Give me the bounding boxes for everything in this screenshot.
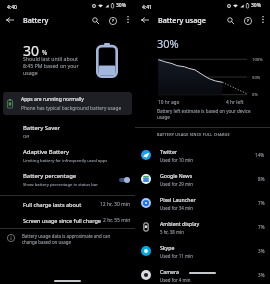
button[interactable]: Battery percentage xyxy=(0,172,135,188)
staticText: 30 xyxy=(23,41,40,60)
staticText: Adaptive Battery xyxy=(23,148,69,156)
staticText: Used for 34 min xyxy=(160,205,193,211)
staticText: Full charge lasts about xyxy=(23,201,100,208)
staticText: Battery Saver xyxy=(23,124,60,132)
staticText: 0% xyxy=(252,92,258,98)
staticText: BATTERY USAGE SINCE FULL CHARGE xyxy=(157,132,230,137)
staticText: Battery xyxy=(23,15,49,25)
staticText: 8% xyxy=(258,176,265,182)
button[interactable]: Full charge lasts about xyxy=(0,196,135,212)
staticText: Show battery percentage in status bar xyxy=(23,182,98,188)
staticText: Pixel Launcher xyxy=(160,196,196,203)
button[interactable]: Screen usage since full charge xyxy=(0,212,135,228)
staticText: Battery percentage xyxy=(23,172,77,180)
staticText: Camera xyxy=(160,268,179,275)
button[interactable]: Google News xyxy=(135,167,270,191)
staticText: Screen usage since full charge xyxy=(23,217,103,224)
staticText: Twitter xyxy=(160,148,178,155)
button[interactable]: Apps are running normally xyxy=(3,92,132,115)
button[interactable]: Battery Saver xyxy=(0,124,135,140)
staticText: 7% xyxy=(258,224,265,230)
staticText: 30% xyxy=(251,2,261,9)
staticText: 3% xyxy=(258,272,265,278)
staticText: Should last until about 8:45 PM based on… xyxy=(23,55,93,76)
staticText: ? xyxy=(247,18,249,24)
staticText: Phone has typical background battery usa… xyxy=(21,105,122,112)
button[interactable]: Search xyxy=(222,12,239,29)
staticText: Used for 29 min xyxy=(160,181,193,187)
button[interactable]: Twitter xyxy=(135,143,270,167)
button[interactable]: Help xyxy=(239,12,256,29)
staticText: Skype xyxy=(160,244,175,251)
staticText: Used for 10 min xyxy=(160,157,193,163)
staticText: Used for 11 min xyxy=(160,253,193,259)
button[interactable]: Search xyxy=(87,12,104,29)
button[interactable]: Ambient display xyxy=(135,215,270,239)
staticText: % xyxy=(42,48,48,56)
staticText: 5 hr, 38 min xyxy=(160,229,184,235)
staticText: Apps are running normally xyxy=(21,96,84,103)
button[interactable]: Back xyxy=(136,11,154,29)
staticText: 14% xyxy=(255,152,265,158)
button[interactable]: Help xyxy=(104,12,121,29)
staticText: ? xyxy=(112,18,114,24)
button[interactable]: Skype xyxy=(135,239,270,263)
staticText: 2 hr, 55 min xyxy=(103,217,131,224)
button[interactable]: Back xyxy=(1,11,19,29)
staticText: Battery left estimate is based on your d… xyxy=(157,108,255,120)
staticText: Limiting battery for infrequently used a… xyxy=(23,158,108,164)
button[interactable]: Camera xyxy=(135,263,270,284)
staticText: 50% xyxy=(252,75,261,81)
staticText: 30% xyxy=(157,36,179,51)
staticText: 7% xyxy=(258,200,265,206)
staticText: 100% xyxy=(252,57,263,63)
staticText: Ambient display xyxy=(160,220,200,227)
staticText: 12 hr, 30 min xyxy=(100,201,131,208)
staticText: 30% xyxy=(116,2,126,9)
staticText: 4 hr left xyxy=(226,99,244,106)
staticText: Used for 4 min xyxy=(160,277,191,283)
staticText: 4:40 xyxy=(7,4,17,11)
staticText: 4:41 xyxy=(142,4,152,11)
staticText: Battery usage xyxy=(158,15,206,25)
button[interactable]: Adaptive Battery xyxy=(0,148,135,164)
staticText: Google News xyxy=(160,172,193,179)
staticText: Battery usage data is approximate and ca… xyxy=(22,233,111,246)
button[interactable]: More options xyxy=(256,12,269,25)
button[interactable]: More options xyxy=(121,12,134,25)
button[interactable]: Pixel Launcher xyxy=(135,191,270,215)
staticText: Off xyxy=(23,134,30,140)
staticText: 3% xyxy=(258,248,265,254)
staticText: 10 hr ago xyxy=(158,99,180,106)
